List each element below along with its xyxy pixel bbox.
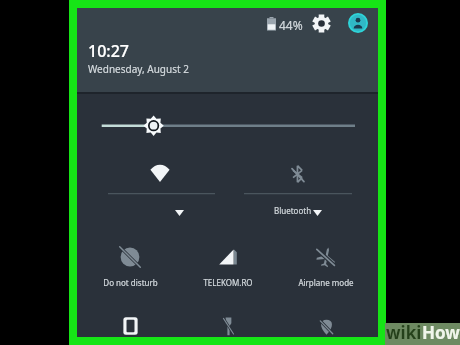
staticText: How — [422, 321, 460, 343]
staticText: Bluetooth — [274, 205, 312, 216]
button[interactable]: Do not disturb — [81, 240, 179, 294]
button[interactable]: Wi-Fi settings — [91, 201, 229, 223]
button[interactable]: Location — [277, 300, 375, 345]
button[interactable]: Airplane mode — [277, 240, 375, 294]
button[interactable]: Brightness — [97, 116, 359, 138]
staticText: 44% — [279, 17, 303, 33]
staticText: TELEKOM.RO — [203, 277, 253, 288]
staticText: Do not disturb — [103, 277, 158, 288]
staticText: wiki — [386, 321, 422, 343]
staticText: Airplane mode — [298, 277, 354, 288]
staticText: 10:27 — [88, 40, 129, 62]
button[interactable]: Wi-Fi — [91, 148, 229, 193]
button[interactable]: Mobile data — [179, 240, 277, 294]
button[interactable]: Auto rotate — [81, 300, 179, 345]
button[interactable]: Bluetooth — [229, 201, 367, 223]
button[interactable]: Bluetooth — [229, 148, 367, 193]
button[interactable]: Flashlight — [179, 300, 277, 345]
button[interactable]: Settings — [310, 12, 332, 34]
button[interactable]: User profile — [347, 12, 369, 34]
staticText: Wednesday, August 2 — [88, 62, 189, 76]
